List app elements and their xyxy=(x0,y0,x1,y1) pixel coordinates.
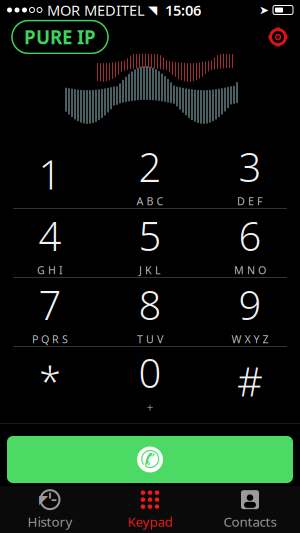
staticText: 2 xyxy=(138,140,161,193)
button[interactable]: # xyxy=(200,347,300,415)
staticText: G H I xyxy=(37,263,63,277)
staticText: 1 xyxy=(38,147,61,200)
button[interactable]: Keypad xyxy=(100,487,200,531)
staticText: MOR MEDITEL xyxy=(47,0,145,20)
staticText: Keypad xyxy=(127,513,172,530)
staticText: A B C xyxy=(136,194,163,208)
button[interactable]: 0 xyxy=(100,347,200,415)
staticText: 3 xyxy=(238,140,261,193)
staticText: 9 xyxy=(238,278,261,331)
button[interactable]: * xyxy=(0,347,100,415)
button[interactable]: 7 xyxy=(0,278,100,346)
staticText: # xyxy=(237,354,263,407)
staticText: 8 xyxy=(138,278,161,331)
button[interactable]: 1 xyxy=(0,140,100,208)
button[interactable]: PURE IP xyxy=(12,21,108,53)
staticText: ✆ xyxy=(140,446,160,473)
staticText: ➤ xyxy=(259,3,269,17)
button[interactable]: 3 xyxy=(200,140,300,208)
button[interactable]: 5 xyxy=(100,209,200,277)
staticText: T U V xyxy=(137,332,163,346)
staticText: + xyxy=(146,400,153,416)
staticText: Contacts xyxy=(223,513,276,530)
staticText: * xyxy=(39,354,61,407)
staticText: M N O xyxy=(234,263,266,277)
staticText: 0 xyxy=(138,346,161,399)
staticText: 5 xyxy=(138,209,161,262)
button[interactable]: 4 xyxy=(0,209,100,277)
button[interactable]: 6 xyxy=(200,209,300,277)
staticText: 15:06 xyxy=(165,0,201,20)
staticText: ◥ xyxy=(148,3,157,17)
staticText: 4 xyxy=(38,209,61,262)
staticText: D E F xyxy=(237,194,263,208)
staticText: History xyxy=(27,513,72,530)
button[interactable]: Settings xyxy=(268,27,288,47)
staticText: 7 xyxy=(38,278,61,331)
staticText: W X Y Z xyxy=(231,332,268,346)
button[interactable]: Contacts xyxy=(200,487,300,531)
staticText: P Q R S xyxy=(32,332,68,346)
staticText: 6 xyxy=(238,209,261,262)
button[interactable]: 2 xyxy=(100,140,200,208)
staticText: PURE IP xyxy=(24,25,96,49)
button[interactable]: ◤ xyxy=(0,487,100,531)
button[interactable]: Call xyxy=(7,436,293,483)
staticText: ◤ xyxy=(39,493,48,506)
staticText: J K L xyxy=(139,263,161,277)
button[interactable]: 8 xyxy=(100,278,200,346)
button[interactable]: 9 xyxy=(200,278,300,346)
